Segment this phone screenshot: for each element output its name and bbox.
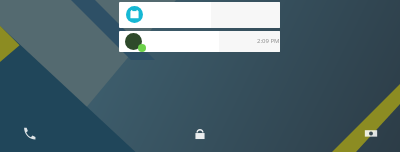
button[interactable]: Camera	[364, 126, 378, 140]
staticText: 2:09 PM	[257, 37, 280, 45]
button[interactable]: Phone	[22, 126, 36, 140]
button[interactable]: 2:09 PM	[119, 31, 280, 52]
button[interactable]	[119, 2, 280, 28]
button[interactable]: Locked	[194, 128, 206, 140]
